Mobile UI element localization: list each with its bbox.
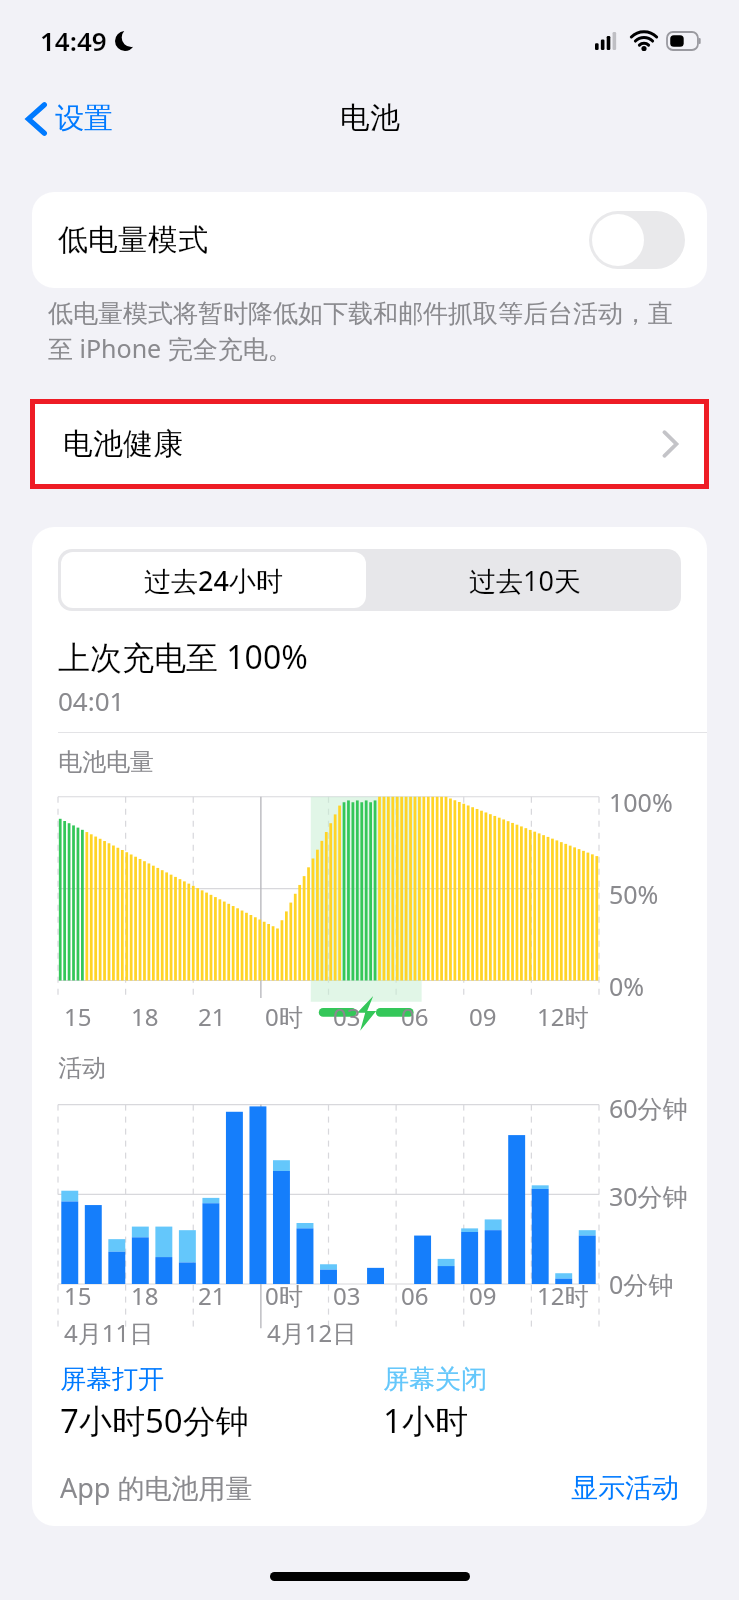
staticText: 活动 [58, 1053, 106, 1083]
staticText: 03 [333, 1000, 361, 1033]
staticText: 50% [609, 877, 659, 911]
staticText: 设置 [55, 100, 113, 137]
staticText: 低电量模式 [58, 221, 208, 259]
staticText: 屏幕打开 [60, 1363, 164, 1396]
button[interactable]: 电池健康 [35, 404, 704, 484]
staticText: 0% [609, 969, 645, 1003]
staticText: 4月12日 [267, 1316, 357, 1349]
button[interactable]: 低电量模式开关 [589, 211, 685, 269]
button[interactable]: 显示活动 [571, 1471, 679, 1505]
staticText: 电池 [340, 99, 400, 137]
staticText: 7小时50分钟 [60, 1398, 249, 1443]
staticText: 屏幕关闭 [383, 1363, 487, 1396]
staticText: 09 [469, 1000, 497, 1033]
button[interactable]: 过去10天 [369, 549, 681, 611]
staticText: 15 [64, 1279, 92, 1312]
staticText: 15 [64, 1000, 92, 1033]
staticText: 60分钟 [609, 1091, 688, 1125]
staticText: 上次充电至 100% [58, 635, 308, 679]
staticText: 14:49 [40, 23, 107, 58]
staticText: 09 [469, 1279, 497, 1312]
staticText: 4月11日 [64, 1316, 154, 1349]
button[interactable]: 设置 [20, 96, 119, 141]
staticText: 1小时 [383, 1398, 468, 1443]
staticText: 30分钟 [609, 1179, 688, 1213]
staticText: 0分钟 [609, 1267, 674, 1301]
staticText: 06 [401, 1000, 429, 1033]
staticText: App 的电池用量 [60, 1469, 253, 1506]
staticText: 12时 [537, 1279, 589, 1312]
staticText: 18 [131, 1000, 159, 1033]
staticText: 03 [333, 1279, 361, 1312]
staticText: 18 [131, 1279, 159, 1312]
button[interactable]: 低电量模式 [32, 192, 707, 288]
staticText: 低电量模式将暂时降低如下载和邮件抓取等后台活动，直至 iPhone 完全充电。 [48, 298, 691, 365]
staticText: 04:01 [58, 683, 125, 718]
staticText: 12时 [537, 1000, 589, 1033]
staticText: 21 [198, 1279, 226, 1312]
staticText: 电池健康 [63, 425, 183, 463]
staticText: 06 [401, 1279, 429, 1312]
staticText: 过去24小时 [144, 562, 283, 599]
staticText: 电池电量 [58, 747, 154, 777]
staticText: 0时 [265, 1000, 303, 1033]
staticText: 100% [609, 785, 673, 819]
staticText: 0时 [265, 1279, 303, 1312]
staticText: 过去10天 [469, 562, 581, 599]
staticText: 21 [198, 1000, 226, 1033]
button[interactable]: 过去24小时 [61, 552, 366, 608]
